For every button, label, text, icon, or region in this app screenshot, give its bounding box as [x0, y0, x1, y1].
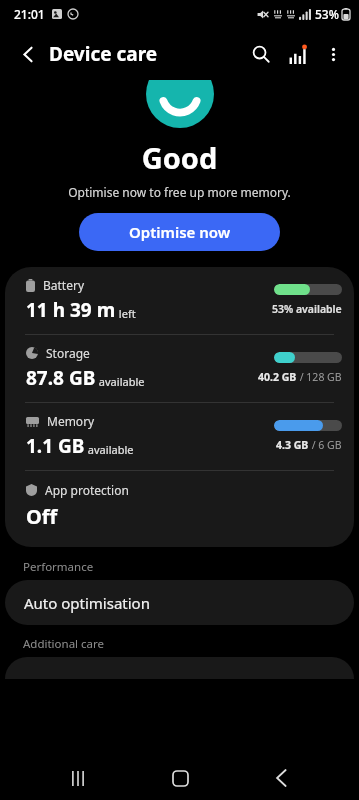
staticText: / 6 GB	[309, 438, 342, 452]
staticText: Optimise now	[129, 222, 231, 242]
button[interactable]: Back	[10, 36, 46, 72]
staticText: Storage	[46, 345, 90, 361]
staticText: 87.8 GB	[26, 365, 96, 391]
staticText: App protection	[45, 482, 129, 498]
staticText: Additional care	[23, 636, 105, 652]
staticText: Off	[26, 503, 58, 530]
staticText: available	[96, 374, 145, 389]
button[interactable]: Search	[243, 36, 279, 72]
button[interactable]: Optimise now	[79, 213, 280, 251]
button[interactable]: Battery	[5, 267, 354, 334]
staticText: Optimise now to free up more memory.	[0, 184, 359, 200]
button[interactable]	[5, 657, 354, 679]
staticText: 11 h 39 m	[26, 297, 116, 323]
button[interactable]: Memory	[5, 403, 354, 470]
staticText: Performance	[23, 559, 94, 575]
button[interactable]: Storage	[5, 335, 354, 402]
button[interactable]: Auto optimisation	[5, 580, 354, 625]
staticText: Battery	[43, 277, 85, 293]
staticText: 4.3 GB	[276, 438, 309, 452]
staticText: / 128 GB	[297, 370, 342, 384]
button[interactable]: More options	[315, 36, 351, 72]
button[interactable]: Recent apps	[54, 756, 102, 800]
staticText: Good	[0, 138, 359, 177]
staticText: Device care	[49, 41, 158, 67]
staticText: available	[85, 442, 134, 457]
button[interactable]: Usage statistics	[279, 36, 315, 72]
button[interactable]: App protection	[5, 471, 354, 547]
staticText: left	[116, 306, 136, 321]
staticText: 1.1 GB	[26, 433, 85, 459]
button[interactable]: Back	[257, 756, 305, 800]
staticText: Memory	[47, 413, 95, 429]
button[interactable]: Home	[156, 756, 204, 800]
staticText: 53% available	[272, 302, 342, 316]
staticText: 21:01	[14, 6, 45, 22]
staticText: 40.2 GB	[258, 370, 297, 384]
staticText: 53%	[315, 6, 339, 22]
staticText: Auto optimisation	[24, 593, 150, 613]
